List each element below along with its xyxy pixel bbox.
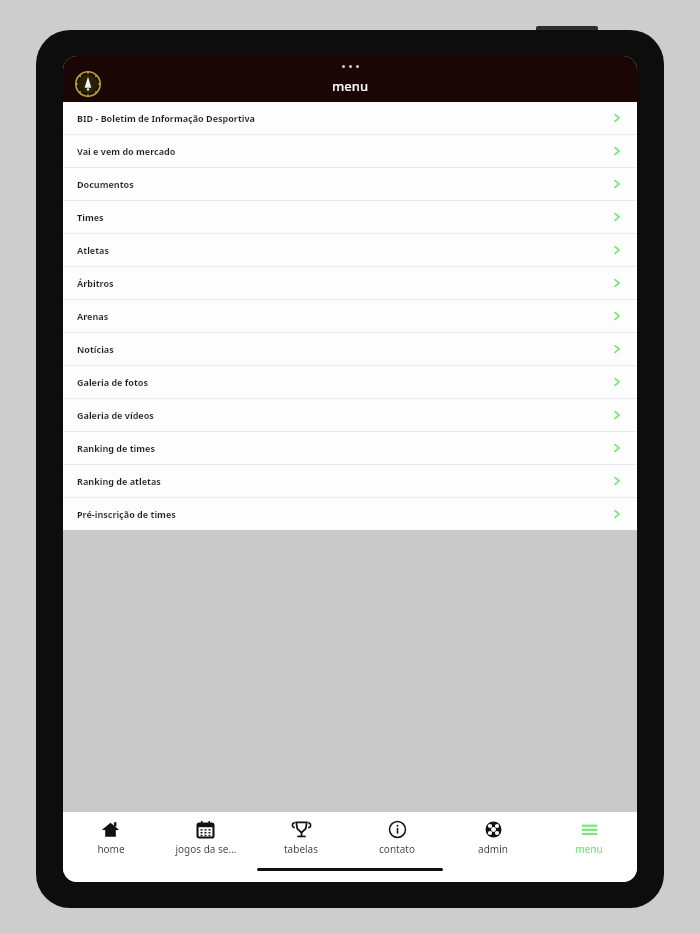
button[interactable]: Atletas xyxy=(63,234,637,266)
button[interactable]: tabelas xyxy=(253,817,349,859)
staticText: contato xyxy=(379,842,415,856)
button[interactable]: Documentos xyxy=(63,168,637,200)
staticText: Arenas xyxy=(77,310,109,322)
button[interactable]: Ranking de times xyxy=(63,432,637,464)
staticText: jogos da se... xyxy=(175,842,237,856)
button[interactable]: Árbitros xyxy=(63,267,637,299)
button[interactable]: home xyxy=(63,817,158,859)
staticText: Pré-inscrição de times xyxy=(77,508,176,520)
button[interactable]: Ranking de atletas xyxy=(63,465,637,497)
button[interactable]: Pré-inscrição de times xyxy=(63,498,637,530)
button[interactable]: BID - Boletim de Informação Desportiva xyxy=(63,102,637,134)
button[interactable]: Times xyxy=(63,201,637,233)
staticText: Galeria de vídeos xyxy=(77,409,154,421)
button[interactable]: Vai e vem do mercado xyxy=(63,135,637,167)
staticText: admin xyxy=(478,842,508,856)
button[interactable]: Notícias xyxy=(63,333,637,365)
button[interactable]: contato xyxy=(349,817,445,859)
button[interactable]: Galeria de vídeos xyxy=(63,399,637,431)
staticText: menu xyxy=(575,842,603,856)
button[interactable]: admin xyxy=(445,817,541,859)
staticText: Times xyxy=(77,211,104,223)
button[interactable]: Galeria de fotos xyxy=(63,366,637,398)
staticText: BID - Boletim de Informação Desportiva xyxy=(77,112,256,124)
button[interactable]: Arenas xyxy=(63,300,637,332)
button[interactable]: jogos da se... xyxy=(158,817,253,859)
staticText: Árbitros xyxy=(77,277,114,289)
staticText: Notícias xyxy=(77,343,114,355)
staticText: Vai e vem do mercado xyxy=(77,145,176,157)
staticText: Atletas xyxy=(77,244,110,256)
staticText: tabelas xyxy=(284,842,318,856)
staticText: Documentos xyxy=(77,178,134,190)
button[interactable]: menu xyxy=(541,817,637,859)
staticText: home xyxy=(97,842,125,856)
staticText: Ranking de atletas xyxy=(77,475,161,487)
staticText: menu xyxy=(63,77,637,95)
button[interactable]: Logo xyxy=(75,71,101,97)
staticText: Galeria de fotos xyxy=(77,376,148,388)
staticText: Ranking de times xyxy=(77,442,155,454)
